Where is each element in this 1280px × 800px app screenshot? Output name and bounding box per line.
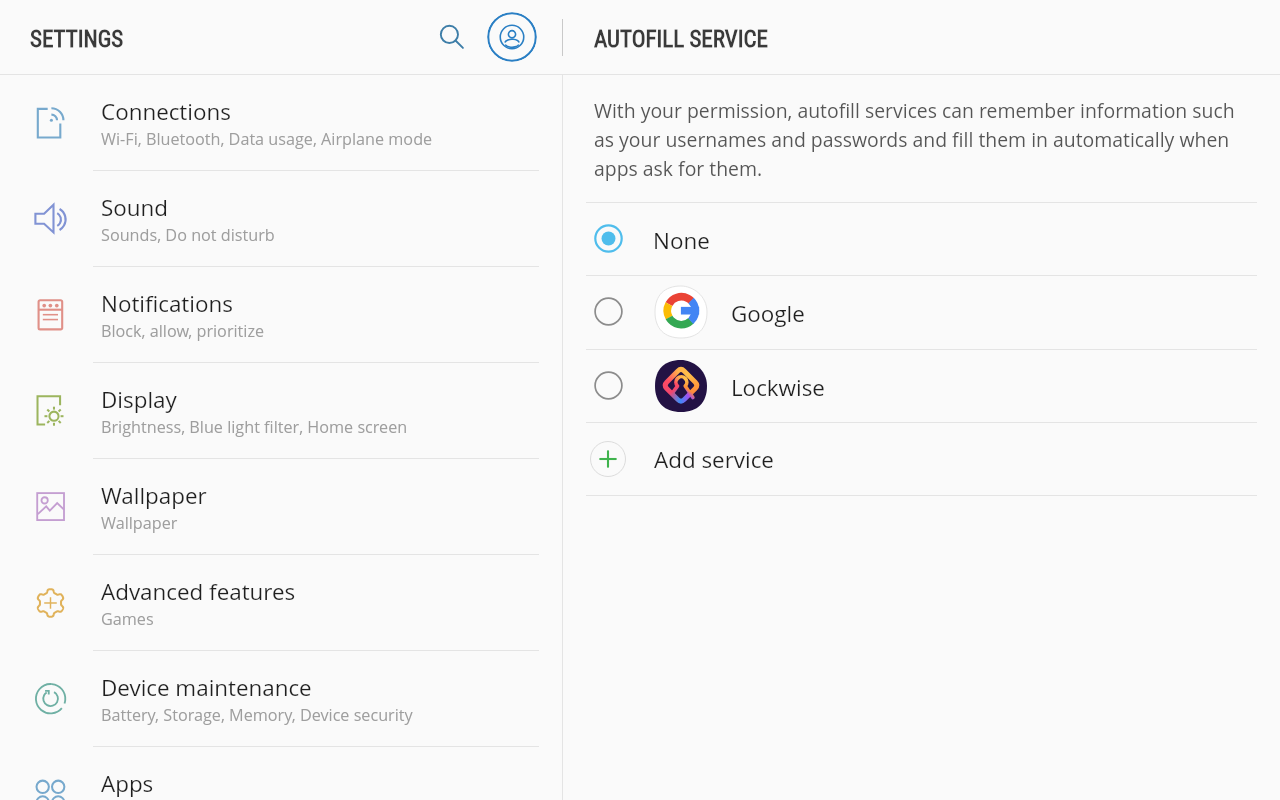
staticText: Battery, Storage, Memory, Device securit… xyxy=(101,704,413,726)
staticText: Wi-Fi, Bluetooth, Data usage, Airplane m… xyxy=(101,128,433,150)
staticText: Brightness, Blue light filter, Home scre… xyxy=(101,416,408,438)
staticText: Wallpaper xyxy=(101,480,207,511)
staticText: Games xyxy=(101,608,154,630)
staticText: Device maintenance xyxy=(101,672,312,703)
staticText: Display xyxy=(101,384,177,415)
staticText: Wallpaper xyxy=(101,512,178,534)
staticText: Google xyxy=(731,298,805,329)
button[interactable]: Display xyxy=(0,363,562,459)
staticText: Add service xyxy=(654,444,774,475)
button[interactable]: Device maintenance xyxy=(0,651,562,747)
staticText: With your permission, autofill services … xyxy=(594,97,1253,181)
staticText: Connections xyxy=(101,96,231,127)
staticText: Notifications xyxy=(101,288,233,319)
staticText: Sounds, Do not disturb xyxy=(101,224,275,246)
button[interactable]: Connections xyxy=(0,75,562,171)
button[interactable]: Notifications xyxy=(0,267,562,363)
staticText: Sound xyxy=(101,192,169,223)
button[interactable]: None xyxy=(563,202,1280,275)
staticText: Block, allow, prioritize xyxy=(101,320,265,342)
button[interactable]: Advanced features xyxy=(0,555,562,651)
button[interactable]: Sound xyxy=(0,171,562,267)
staticText: Apps xyxy=(101,768,154,799)
staticText: SETTINGS xyxy=(30,26,124,53)
button[interactable]: Apps xyxy=(0,747,562,800)
button[interactable]: Search xyxy=(430,15,474,59)
staticText: Advanced features xyxy=(101,576,296,607)
button[interactable]: Lockwise xyxy=(563,349,1280,422)
staticText: AUTOFILL SERVICE xyxy=(594,26,768,53)
staticText: None xyxy=(653,225,710,256)
button[interactable]: Add service xyxy=(563,422,1280,495)
button[interactable]: Account xyxy=(487,12,537,62)
staticText: Lockwise xyxy=(731,372,825,403)
button[interactable]: Google xyxy=(563,275,1280,348)
button[interactable]: Wallpaper xyxy=(0,459,562,555)
